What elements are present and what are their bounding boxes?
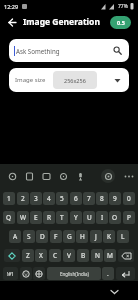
button[interactable]: 5 [56,192,68,205]
button[interactable]: 7 [83,192,95,205]
button[interactable] [118,249,134,262]
staticText: Image Generation [23,16,100,28]
button[interactable]: Y [70,211,82,224]
button[interactable]: English(India) [47,267,101,280]
button[interactable]: K [103,230,115,243]
button[interactable]: . [102,267,114,280]
staticText: . [107,269,109,278]
button[interactable]: O [109,211,121,224]
staticText: !#1 [7,271,14,277]
button[interactable]: 3 [30,192,42,205]
button[interactable]: E [30,211,42,224]
staticText: 4 [47,194,51,203]
staticText: 0 [127,194,131,203]
staticText: 77% [118,3,128,10]
staticText: H [80,232,85,241]
button[interactable] [38,168,55,184]
button[interactable] [101,169,115,183]
staticText: 5 [60,194,64,203]
button[interactable]: 9 [109,192,121,205]
staticText: 9 [113,194,117,203]
staticText: 0.5 [117,19,125,26]
staticText: L [121,232,125,241]
button[interactable]: Q [3,211,15,224]
button[interactable]: U [83,211,95,224]
staticText: N [95,251,100,260]
staticText: S [27,232,31,241]
staticText: G [67,232,72,241]
button[interactable]: 4 [43,192,55,205]
button[interactable] [110,289,119,295]
button[interactable] [55,168,72,184]
button[interactable]: 1 [3,192,15,205]
button[interactable] [21,168,38,184]
staticText: B [81,251,86,260]
button[interactable]: 0.5 [110,16,131,29]
button[interactable] [20,267,32,280]
staticText: C [53,251,58,260]
button[interactable] [4,168,21,184]
staticText: F [54,232,58,241]
button[interactable]: S [23,230,35,243]
staticText: I [101,213,104,222]
button[interactable]: X [35,249,47,262]
staticText: 2 [21,194,25,203]
button[interactable]: B [77,249,89,262]
staticText: 8 [100,194,104,203]
button[interactable]: W [17,211,29,224]
staticText: K [107,232,112,241]
staticText: E [34,213,38,222]
button[interactable]: P [123,211,135,224]
button[interactable] [72,168,89,184]
button[interactable]: 0 [123,192,135,205]
button[interactable] [124,172,134,181]
button[interactable]: M [104,249,116,262]
button[interactable] [4,249,20,262]
staticText: U [87,213,92,222]
button[interactable]: L [117,230,129,243]
staticText: A [13,232,18,241]
staticText: X [39,251,43,260]
staticText: J [95,232,97,241]
staticText: Image size [15,76,46,84]
staticText: English(India) [60,271,89,277]
staticText: M [107,251,113,260]
button[interactable] [6,16,18,28]
button[interactable]: G [63,230,75,243]
button[interactable]: 8 [96,192,108,205]
button[interactable]: D [36,230,48,243]
button[interactable] [33,267,45,280]
staticText: P [127,213,131,222]
staticText: D [40,232,45,241]
button[interactable]: Ask Something [9,39,129,62]
button[interactable]: 2 [17,192,29,205]
staticText: Ask Something [16,47,60,55]
staticText: Q [6,213,12,222]
staticText: 12:29 [4,3,19,10]
staticText: 1 [7,194,11,203]
button[interactable]: H [76,230,88,243]
button[interactable]: C [49,249,61,262]
button[interactable]: A [9,230,21,243]
button[interactable] [116,267,135,280]
button[interactable]: T [56,211,68,224]
button[interactable]: J [90,230,102,243]
staticText: 3 [34,194,38,203]
button[interactable]: Z [22,249,34,262]
button[interactable]: I [96,211,108,224]
staticText: W [20,213,27,222]
staticText: 6 [74,194,78,203]
staticText: 7 [87,194,91,203]
staticText: V [67,251,71,260]
button[interactable]: 6 [70,192,82,205]
button[interactable]: V [63,249,75,262]
staticText: Y [74,213,78,222]
button[interactable]: N [91,249,103,262]
button[interactable]: Image size [9,68,129,92]
staticText: T [60,213,64,222]
button[interactable]: F [50,230,62,243]
staticText: 256x256 [64,77,86,84]
staticText: O [112,213,118,222]
button[interactable]: R [43,211,55,224]
button[interactable]: !#1 [3,267,18,280]
